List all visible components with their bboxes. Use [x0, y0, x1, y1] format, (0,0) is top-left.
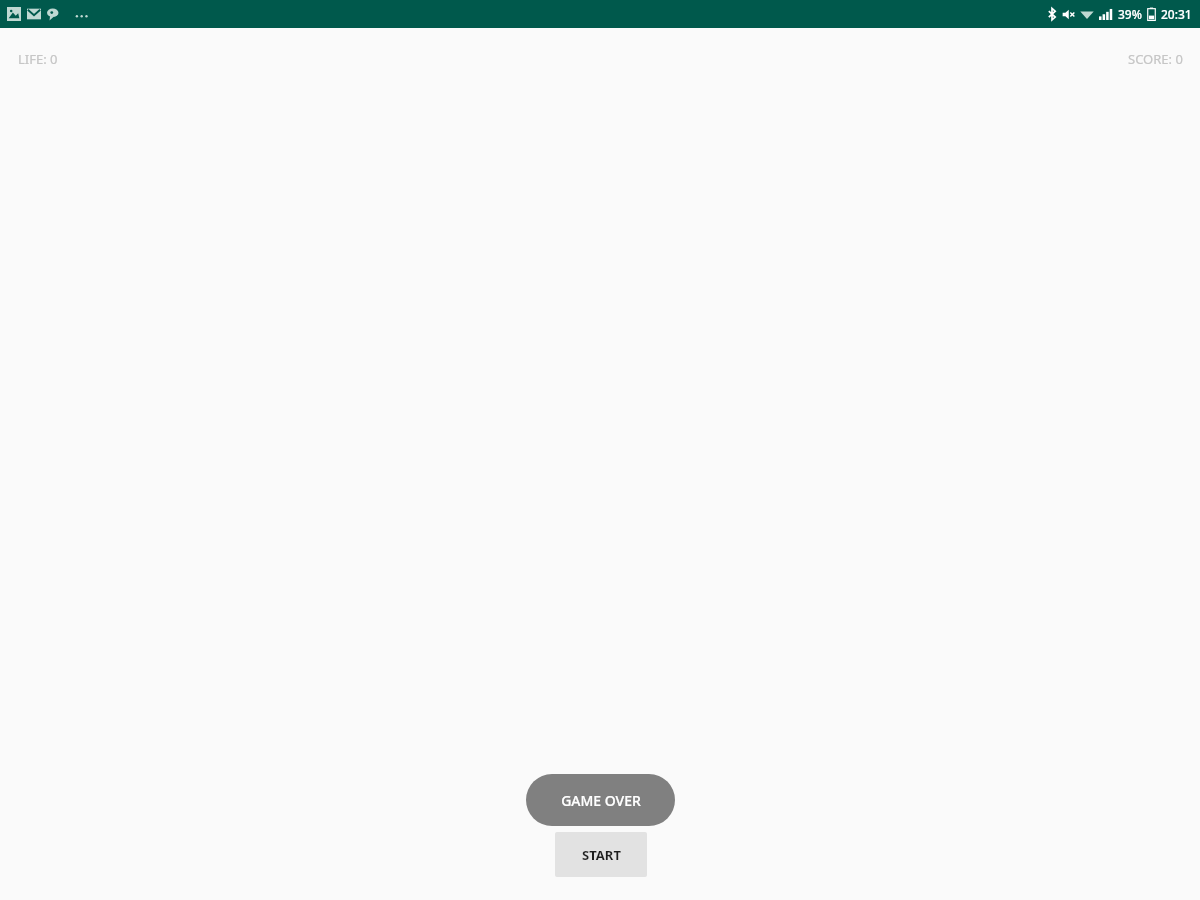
button[interactable]: START — [555, 832, 647, 877]
staticText: SCORE: 0 — [1128, 50, 1183, 68]
staticText: GAME OVER — [561, 791, 641, 810]
staticText: 20:31 — [1161, 6, 1192, 22]
staticText: LIFE: 0 — [18, 50, 58, 68]
button[interactable]: GAME OVER — [526, 774, 675, 826]
staticText: START — [582, 846, 621, 864]
staticText: 39% — [1118, 6, 1142, 22]
